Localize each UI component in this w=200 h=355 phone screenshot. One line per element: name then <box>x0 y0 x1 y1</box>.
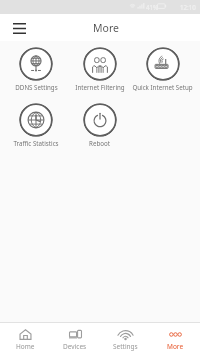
staticText: 12:10 <box>180 3 196 11</box>
staticText: Home <box>16 342 35 351</box>
button[interactable]: DDNS Settings <box>4 47 68 91</box>
staticText: Internet Filtering <box>75 83 125 91</box>
button[interactable]: Traffic Statistics <box>4 103 68 147</box>
staticText: Quick Internet Setup <box>132 83 193 91</box>
staticText: DDNS Settings <box>15 83 58 91</box>
staticText: Traffic Statistics <box>13 139 59 147</box>
staticText: Reboot <box>89 139 110 147</box>
button[interactable]: Quick Internet Setup <box>131 47 194 91</box>
button[interactable]: Home <box>0 325 50 354</box>
button[interactable]: Open navigation menu <box>9 18 29 38</box>
staticText: 41% <box>146 3 159 11</box>
staticText: Settings <box>113 342 138 351</box>
button[interactable]: Settings <box>100 325 150 354</box>
button[interactable]: Reboot <box>68 103 131 147</box>
button[interactable]: Devices <box>50 325 100 354</box>
staticText: More <box>93 21 119 35</box>
staticText: Devices <box>63 342 87 351</box>
staticText: More <box>167 342 184 351</box>
button[interactable]: Internet Filtering <box>68 47 131 91</box>
button[interactable]: More <box>150 325 200 354</box>
